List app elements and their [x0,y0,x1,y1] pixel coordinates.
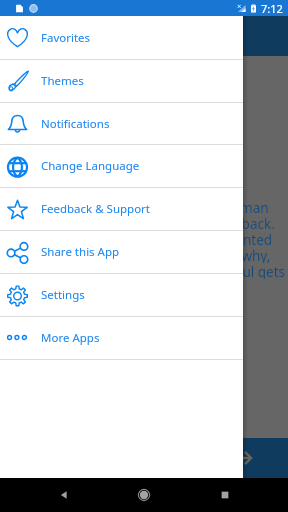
staticText: at the very end of it all, a true hopefu… [16,263,286,279]
button[interactable]: Change Language [0,145,243,187]
staticText: For all of his long life he had just wan… [16,231,273,247]
staticText: Themes [41,73,84,89]
staticText: Notifications [41,116,110,132]
staticText: only to know the reason behind all, why, [16,247,271,263]
staticText: Favorites [41,30,91,46]
button[interactable]: More Apps [0,317,243,359]
button[interactable]: Recents [208,478,242,512]
button[interactable]: Home [127,478,161,512]
staticText: More Apps [41,330,100,346]
staticText: Share this App [41,244,120,260]
staticText: 7:12 [261,1,283,16]
button[interactable]: Share this App [0,231,243,273]
button[interactable]: Back [47,478,81,512]
button[interactable]: Themes [0,60,243,102]
button[interactable]: Next [234,447,256,469]
button[interactable]: Favorites [0,16,243,59]
staticText: and walked away and never looked back. [16,215,275,231]
staticText: Change Language [41,158,140,174]
staticText: Settings [41,287,85,303]
button[interactable]: Feedback & Support [0,188,243,230]
button[interactable]: Settings [0,274,243,316]
staticText: There once lived a kind, thoughtful man [16,199,269,215]
staticText: Feedback & Support [41,201,151,217]
button[interactable]: Notifications [0,103,243,144]
